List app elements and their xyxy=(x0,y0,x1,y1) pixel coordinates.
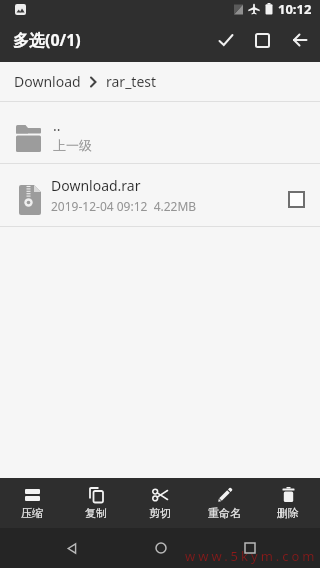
button[interactable] xyxy=(205,528,294,568)
button[interactable]: 剪切 xyxy=(128,478,192,528)
staticText: 2019-12-04 09:12 4.22MB xyxy=(51,198,197,214)
staticText: 剪切 xyxy=(149,506,171,520)
button[interactable]: 删除 xyxy=(256,478,320,528)
button[interactable] xyxy=(116,528,205,568)
staticText: Download xyxy=(14,72,81,91)
staticText: 多选(0/1) xyxy=(13,29,81,51)
button[interactable]: Download.rar xyxy=(0,164,320,226)
button[interactable] xyxy=(27,528,116,568)
button[interactable] xyxy=(281,18,318,62)
button[interactable]: Download xyxy=(0,62,320,101)
staticText: .. xyxy=(53,116,61,135)
staticText: 压缩 xyxy=(21,506,43,520)
button[interactable] xyxy=(244,18,281,62)
staticText: 10:12 xyxy=(278,0,312,18)
staticText: 删除 xyxy=(277,506,299,520)
staticText: Download.rar xyxy=(51,176,141,195)
button[interactable]: 压缩 xyxy=(0,478,64,528)
button[interactable]: 重命名 xyxy=(192,478,256,528)
button[interactable]: .. xyxy=(0,102,320,163)
staticText: rar_test xyxy=(106,72,157,91)
staticText: 上一级 xyxy=(53,137,92,153)
button[interactable] xyxy=(289,192,304,207)
staticText: 重命名 xyxy=(208,506,241,520)
button[interactable] xyxy=(207,18,244,62)
button[interactable]: 复制 xyxy=(64,478,128,528)
staticText: 复制 xyxy=(85,506,107,520)
staticText: www.5kym.com xyxy=(185,547,318,565)
